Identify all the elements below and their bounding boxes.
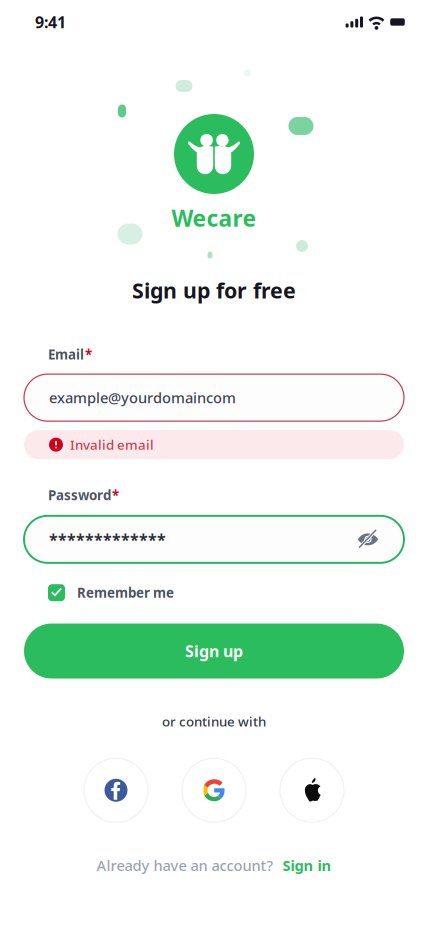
- button[interactable]: Sign up: [0, 623, 428, 678]
- staticText: Email: [48, 345, 84, 363]
- staticText: *: [112, 486, 119, 504]
- staticText: Wecare: [171, 203, 256, 233]
- button[interactable]: Continue with Facebook: [84, 758, 148, 822]
- staticText: Already have an account?: [96, 855, 273, 875]
- staticText: Sign up for free: [132, 276, 296, 304]
- staticText: Invalid email: [70, 436, 154, 453]
- staticText: or continue with: [162, 712, 266, 730]
- staticText: *: [85, 345, 92, 363]
- button[interactable]: example@yourdomaincom: [0, 374, 428, 421]
- staticText: Remember me: [77, 584, 174, 601]
- button[interactable]: Continue with Google: [182, 758, 246, 822]
- staticText: Sign in: [282, 855, 331, 875]
- staticText: 9:41: [35, 11, 66, 33]
- button[interactable]: Show password: [357, 528, 379, 550]
- button[interactable]: Remember me: [0, 584, 428, 601]
- staticText: Sign up: [185, 640, 243, 662]
- button[interactable]: Continue with Apple: [280, 758, 344, 822]
- staticText: example@yourdomaincom: [49, 388, 236, 407]
- button[interactable]: Sign in: [282, 855, 331, 875]
- staticText: *************: [49, 529, 166, 550]
- staticText: Password: [48, 486, 111, 504]
